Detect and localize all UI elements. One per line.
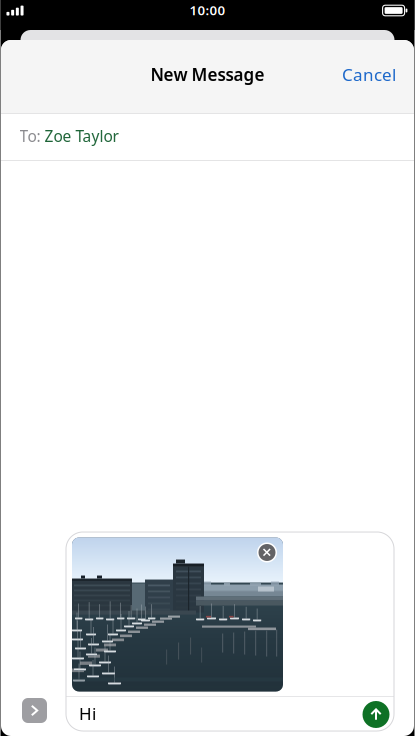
staticText: Cancel xyxy=(342,63,396,86)
staticText: Hi xyxy=(79,702,96,725)
staticText: New Message xyxy=(150,63,264,86)
button[interactable]: Remove attachment xyxy=(257,542,277,562)
button[interactable]: Send xyxy=(362,701,389,728)
button[interactable]: Show more apps xyxy=(22,698,47,723)
button[interactable]: Cancel xyxy=(334,55,404,98)
staticText: To: xyxy=(19,125,40,147)
button[interactable]: To: xyxy=(1,114,414,160)
staticText: 10:00 xyxy=(189,1,225,19)
staticText: Zoe Taylor xyxy=(44,125,118,147)
